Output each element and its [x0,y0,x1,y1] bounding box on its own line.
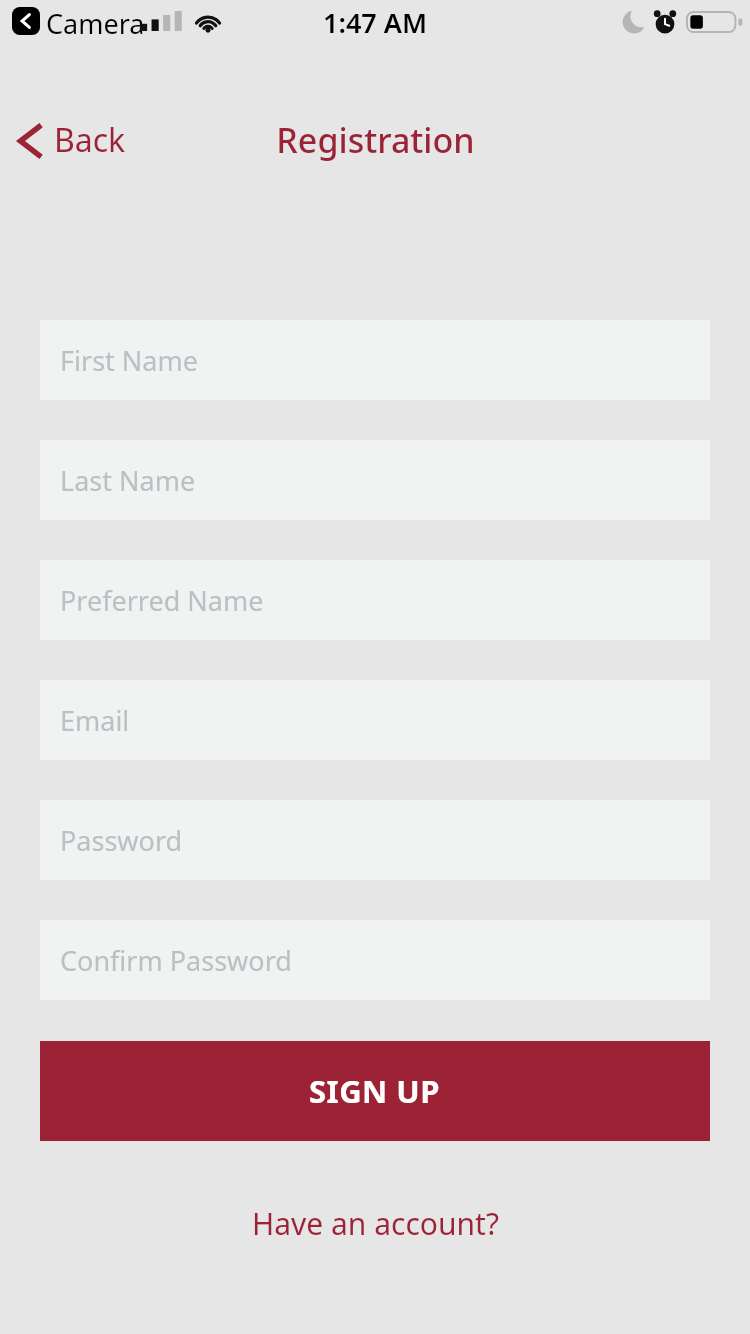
staticText: SIGN UP [309,1070,441,1112]
button[interactable]: First Name [40,320,710,400]
button[interactable]: Back [6,108,156,172]
staticText: Back [54,118,126,162]
staticText: First Name [60,342,198,379]
staticText: Preferred Name [60,582,264,619]
staticText: Last Name [60,462,196,499]
staticText: 1:47 AM [323,4,428,41]
staticText: Password [60,822,183,859]
staticText: Confirm Password [60,942,292,979]
staticText: Registration [276,117,475,163]
button[interactable]: Password [40,800,710,880]
staticText: Camera [46,5,145,42]
button[interactable]: Last Name [40,440,710,520]
button[interactable]: Email [40,680,710,760]
button[interactable]: Preferred Name [40,560,710,640]
button[interactable]: Confirm Password [40,920,710,1000]
staticText: Email [60,702,130,739]
button[interactable]: SIGN UP [40,1041,710,1141]
staticText: Have an account? [252,1203,499,1244]
button[interactable]: Have an account? [0,1192,750,1254]
